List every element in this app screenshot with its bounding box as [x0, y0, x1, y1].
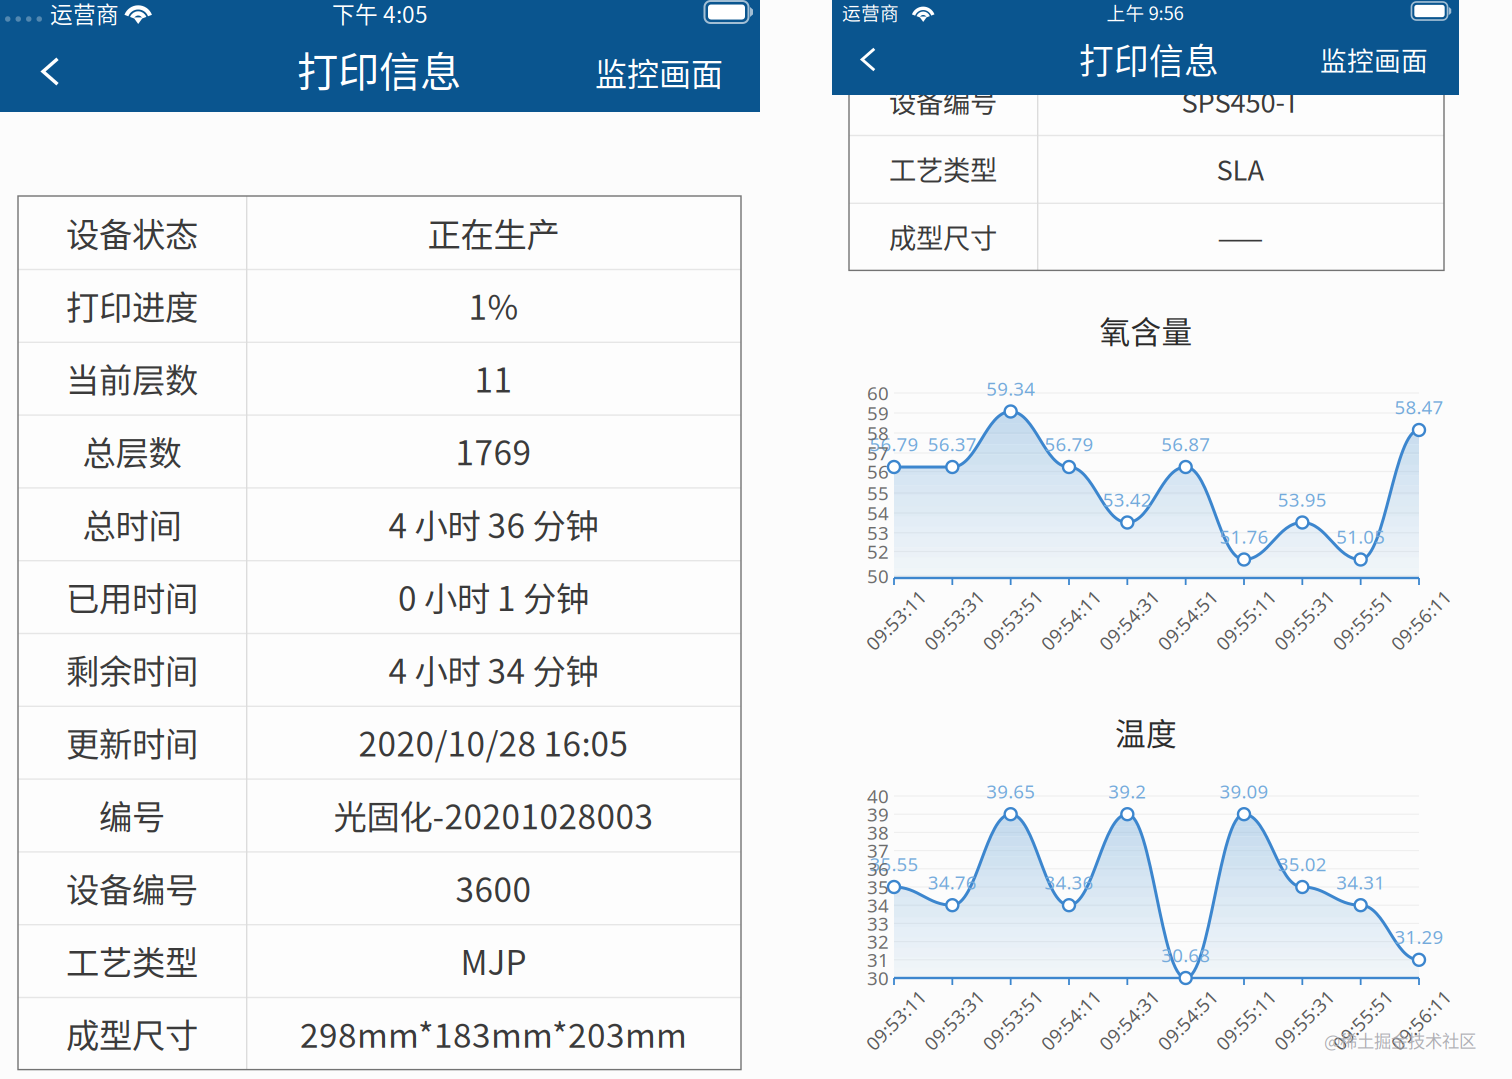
staticText: MJP	[460, 936, 526, 985]
staticText: 09:54:11	[1033, 607, 1109, 633]
staticText: 31	[867, 947, 889, 972]
staticText: 上午 9:56	[1106, 0, 1183, 25]
staticText: 设备编号	[889, 81, 997, 121]
staticText: 09:55:31	[1266, 1007, 1342, 1033]
staticText: 09:53:11	[858, 607, 934, 633]
staticText: 09:55:51	[1325, 1007, 1401, 1033]
staticText: 59.34	[986, 376, 1035, 401]
staticText: 39	[867, 801, 889, 827]
staticText: 58	[867, 420, 889, 446]
staticText: 下午 4:05	[332, 0, 428, 29]
staticText: 09:55:11	[1208, 607, 1284, 633]
staticText: 09:56:11	[1383, 1007, 1459, 1033]
staticText: 温度	[1115, 710, 1177, 754]
staticText: 54	[867, 500, 889, 526]
staticText: 36	[867, 856, 889, 881]
staticText: 53	[867, 520, 889, 545]
staticText: 编号	[99, 791, 165, 839]
staticText: 53.95	[1278, 487, 1327, 512]
staticText: 监控画面	[595, 49, 723, 95]
staticText: 39.65	[986, 778, 1035, 804]
staticText: 56.79	[1044, 431, 1093, 457]
staticText: 09:53:11	[858, 1007, 934, 1033]
staticText: 52	[867, 539, 889, 564]
staticText: 09:55:11	[1208, 1007, 1284, 1033]
staticText: 当前层数	[66, 354, 198, 402]
staticText: 39.09	[1219, 778, 1268, 804]
staticText: 51.05	[1336, 524, 1385, 549]
staticText: 运营商	[50, 0, 119, 29]
staticText: 57	[867, 440, 889, 466]
staticText: 工艺类型	[889, 149, 997, 188]
staticText: ——	[1217, 217, 1263, 256]
staticText: 已用时间	[66, 572, 198, 621]
staticText: 设备状态	[66, 208, 198, 257]
staticText: 0 小时 1 分钟	[398, 572, 589, 621]
staticText: 成型尺寸	[889, 217, 997, 256]
staticText: SPS450-T	[1181, 81, 1299, 121]
staticText: 34.36	[1044, 869, 1093, 895]
staticText: 34.31	[1336, 869, 1385, 895]
staticText: 监控画面	[1320, 40, 1428, 78]
staticText: 4 小时 34 分钟	[388, 645, 598, 693]
staticText: 4 小时 36 分钟	[388, 499, 598, 548]
staticText: @稀土掘金技术社区	[1324, 1027, 1476, 1053]
staticText: 55	[867, 480, 889, 506]
button[interactable]: 监控画面	[0, 0, 160, 58]
staticText: SLA	[1216, 149, 1264, 188]
staticText: 09:54:11	[1033, 1007, 1109, 1033]
staticText: 总时间	[82, 499, 181, 548]
staticText: 总层数	[82, 427, 181, 475]
staticText: 34.76	[928, 869, 977, 895]
staticText: 31.29	[1394, 924, 1443, 949]
staticText: 09:54:31	[1091, 1007, 1167, 1033]
staticText: 59	[867, 400, 889, 426]
button[interactable]: 返回	[0, 0, 62, 62]
staticText: 33	[867, 911, 889, 936]
staticText: 剩余时间	[66, 645, 198, 693]
staticText: 40	[867, 783, 889, 809]
staticText: 35	[867, 874, 889, 900]
staticText: 09:53:31	[916, 1007, 992, 1033]
staticText: 30.68	[1161, 942, 1210, 968]
staticText: 56.79	[869, 431, 918, 457]
staticText: 09:54:31	[1091, 607, 1167, 633]
staticText: 3600	[455, 863, 531, 912]
staticText: 11	[474, 354, 512, 402]
staticText: 工艺类型	[66, 936, 198, 985]
button[interactable]: 监控画面	[760, 0, 900, 50]
staticText: 09:56:11	[1383, 607, 1459, 633]
staticText: 打印信息	[297, 39, 461, 99]
staticText: 2020/10/28 16:05	[358, 718, 628, 766]
staticText: 60	[867, 380, 889, 406]
staticText: 更新时间	[66, 718, 198, 766]
staticText: 56.37	[928, 431, 977, 457]
staticText: 39.2	[1108, 778, 1146, 804]
staticText: 50	[867, 563, 889, 589]
staticText: 09:55:51	[1325, 607, 1401, 633]
staticText: 53.42	[1103, 487, 1152, 512]
staticText: 09:53:51	[975, 607, 1051, 633]
staticText: 09:55:31	[1266, 607, 1342, 633]
staticText: 正在生产	[427, 208, 559, 257]
staticText: 35.55	[869, 851, 918, 877]
staticText: 37	[867, 838, 889, 863]
staticText: 光固化-20201028003	[333, 791, 653, 839]
staticText: 打印进度	[66, 281, 198, 329]
staticText: 09:53:31	[916, 607, 992, 633]
staticText: 09:54:51	[1150, 607, 1226, 633]
staticText: 34	[867, 892, 889, 918]
staticText: 38	[867, 820, 889, 845]
staticText: 35.02	[1278, 851, 1327, 877]
staticText: 56.87	[1161, 431, 1210, 457]
staticText: 298mm*183mm*203mm	[300, 1009, 687, 1057]
staticText: 51.76	[1219, 524, 1268, 549]
staticText: 成型尺寸	[66, 1009, 198, 1057]
staticText: 30	[867, 965, 889, 991]
staticText: 1769	[455, 427, 531, 475]
staticText: 设备编号	[66, 863, 198, 912]
staticText: 58.47	[1394, 394, 1443, 420]
staticText: 56	[867, 459, 889, 484]
staticText: 打印信息	[1079, 34, 1219, 84]
